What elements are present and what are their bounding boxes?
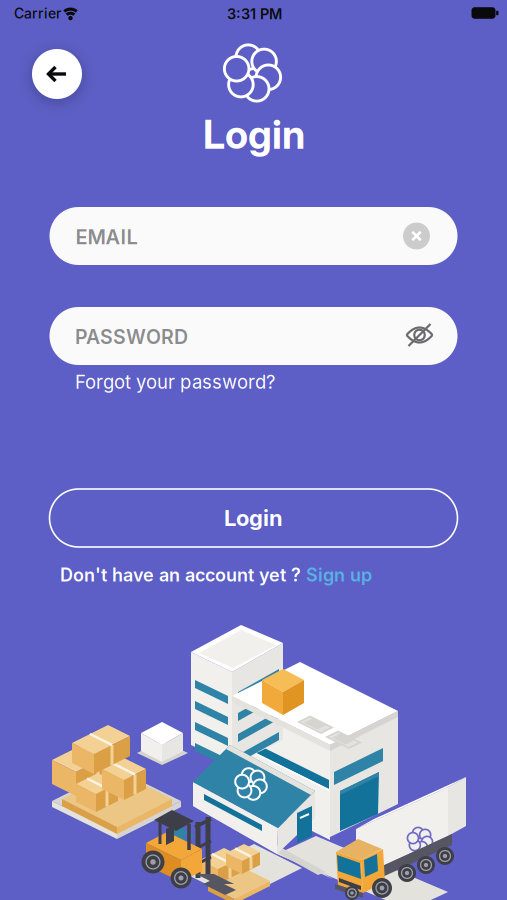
staticText: EMAIL (75, 225, 137, 249)
button[interactable]: Email (49, 207, 457, 265)
button[interactable]: Forgot your password? (75, 371, 275, 393)
staticText: Login (203, 111, 305, 158)
staticText: Sign up (306, 564, 372, 586)
button[interactable]: Password (49, 307, 457, 365)
staticText: Don't have an account yet ? (60, 564, 306, 586)
button[interactable]: Back (32, 49, 82, 99)
staticText: Login (224, 505, 283, 531)
staticText: PASSWORD (75, 325, 188, 349)
staticText: Forgot your password? (75, 371, 275, 393)
staticText: Carrier (14, 5, 61, 22)
button[interactable]: Sign up (306, 564, 372, 586)
button[interactable]: Login (49, 489, 457, 547)
staticText: 3:31 PM (227, 5, 282, 23)
